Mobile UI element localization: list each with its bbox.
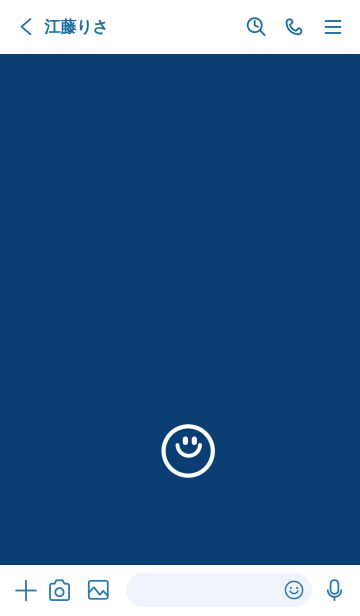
button[interactable]: Search (236, 4, 276, 48)
button[interactable]: Voice message (317, 568, 351, 612)
button[interactable]: Stickers (276, 573, 312, 607)
button[interactable]: Menu (313, 5, 353, 49)
button[interactable]: Call (274, 5, 314, 49)
staticText: 江藤りさ (44, 17, 108, 37)
button[interactable]: Photos (81, 568, 115, 612)
button[interactable]: Camera (42, 568, 76, 612)
button[interactable]: 江藤りさ (20, 5, 128, 49)
button[interactable]: More (9, 568, 43, 612)
